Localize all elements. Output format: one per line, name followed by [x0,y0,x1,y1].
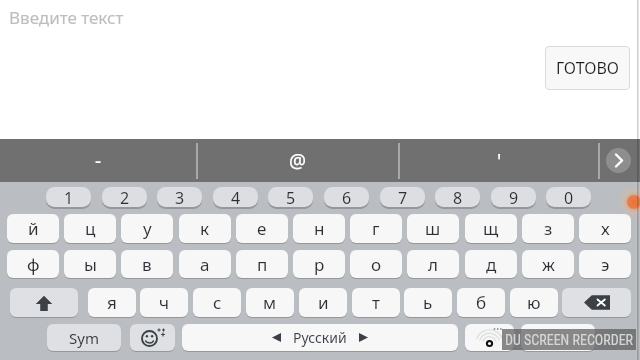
staticText: Русский [293,328,347,347]
staticText: 2 [120,187,130,207]
button[interactable]: Shift [10,288,78,317]
button[interactable]: ж [522,250,574,278]
staticText: я [107,291,117,314]
staticText: г [372,217,380,240]
staticText: ю [527,291,541,314]
staticText: ч [159,291,170,314]
staticText: б [476,291,487,314]
staticText: у [143,217,152,240]
button[interactable]: 6 [324,187,369,207]
staticText: т [372,291,380,314]
staticText: ф [27,253,40,276]
staticText: и [318,291,329,314]
staticText: Введите текст [9,6,124,29]
staticText: а [200,253,210,276]
button[interactable]: Emoji [130,324,175,351]
staticText: л [428,253,438,276]
staticText: 0 [564,187,574,207]
staticText: 5 [286,187,296,207]
staticText: й [28,217,39,240]
staticText: 6 [342,187,352,207]
button[interactable]: ч [140,288,188,317]
button[interactable]: ь [404,288,452,317]
button[interactable]: м [246,288,294,317]
button[interactable]: 1 [46,187,91,207]
staticText: - [95,148,102,174]
staticText: ц [85,217,96,240]
button[interactable]: г [350,214,402,243]
button[interactable]: - [0,139,196,182]
button[interactable]: к [179,214,231,243]
staticText: ж [542,253,555,276]
button[interactable]: 8 [435,187,480,207]
button[interactable]: о [350,250,402,278]
staticText: 1 [64,187,74,207]
button[interactable]: р [293,250,345,278]
staticText: о [371,253,382,276]
staticText: 7 [398,187,408,207]
staticText: ГОТОВО [556,57,620,79]
button[interactable]: 9 [491,187,536,207]
staticText: р [314,253,325,276]
button[interactable]: 0 [546,187,591,207]
button[interactable]: у [121,214,173,243]
button[interactable]: 4 [213,187,258,207]
button[interactable]: ф [7,250,59,278]
button[interactable]: 7 [380,187,425,207]
button[interactable]: п [236,250,288,278]
button[interactable]: й [7,214,59,243]
staticText: Sym [69,328,99,348]
staticText: @ [289,148,307,174]
button[interactable]: н [293,214,345,243]
staticText: к [200,217,210,240]
staticText: э [601,253,610,276]
staticText: п [257,253,268,276]
staticText: 4 [231,187,241,207]
staticText: з [544,217,553,240]
button[interactable]: @ [198,139,398,182]
button[interactable]: л [407,250,459,278]
staticText: 3 [175,187,185,207]
button[interactable]: ш [407,214,459,243]
button[interactable]: я [88,288,136,317]
staticText: щ [483,217,499,240]
button[interactable]: д [465,250,517,278]
button[interactable]: в [121,250,173,278]
staticText: в [142,253,152,276]
button[interactable]: х [579,214,631,243]
staticText: д [486,253,497,276]
staticText: е [257,217,267,240]
button[interactable]: б [457,288,505,317]
button[interactable]: э [579,250,631,278]
button[interactable]: ц [64,214,116,243]
staticText: х [601,217,610,240]
button[interactable]: ' [400,139,598,182]
button[interactable]: с [193,288,241,317]
button[interactable]: а [179,250,231,278]
button[interactable]: щ [465,214,517,243]
button[interactable]: ы [64,250,116,278]
staticText: с [213,291,222,314]
button[interactable]: е [236,214,288,243]
staticText: м [263,291,277,314]
button[interactable]: Backspace [562,288,631,317]
staticText: 8 [453,187,463,207]
button[interactable]: Sym [47,324,121,351]
button[interactable]: т [352,288,400,317]
button[interactable]: ГОТОВО [545,46,630,90]
staticText: 9 [509,187,519,207]
button[interactable]: з [522,214,574,243]
staticText: ь [423,291,433,314]
staticText: DU SCREEN RECORDER [505,332,634,348]
button[interactable]: Русский [182,324,458,351]
staticText: ' [497,148,502,174]
button[interactable]: More suggestions [606,148,631,173]
button[interactable]: 3 [157,187,202,207]
staticText: ы [84,253,97,276]
button[interactable]: и [299,288,347,317]
button[interactable]: Enter [521,324,595,351]
button[interactable]: 5 [268,187,313,207]
button[interactable]: Voice input [465,324,514,351]
button[interactable]: 2 [102,187,147,207]
button[interactable]: ю [510,288,558,317]
